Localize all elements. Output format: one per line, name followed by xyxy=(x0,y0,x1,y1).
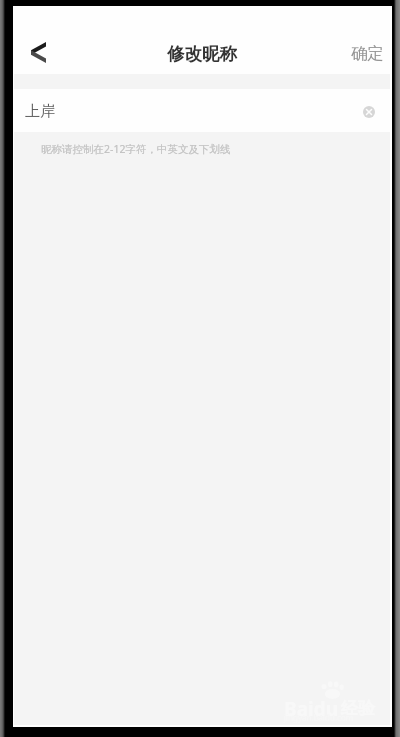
button[interactable]: Back xyxy=(28,38,49,66)
staticText: 上岸 xyxy=(25,102,55,121)
button[interactable]: 确定 xyxy=(341,32,390,73)
staticText: 修改昵称 xyxy=(167,43,237,65)
button[interactable]: Clear text xyxy=(357,100,381,124)
staticText: 昵称请控制在2-12字符，中英文及下划线 xyxy=(41,142,231,156)
staticText: 确定 xyxy=(351,43,384,64)
